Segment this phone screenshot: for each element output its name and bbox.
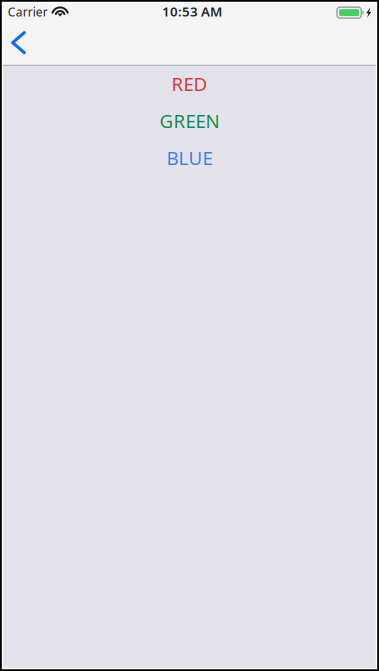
staticText: BLUE	[166, 145, 212, 170]
staticText: Carrier	[8, 4, 48, 20]
button[interactable]: Back	[3, 23, 44, 64]
staticText: 10:53 AM	[162, 2, 222, 20]
staticText: GREEN	[159, 108, 219, 133]
staticText: RED	[171, 71, 207, 96]
